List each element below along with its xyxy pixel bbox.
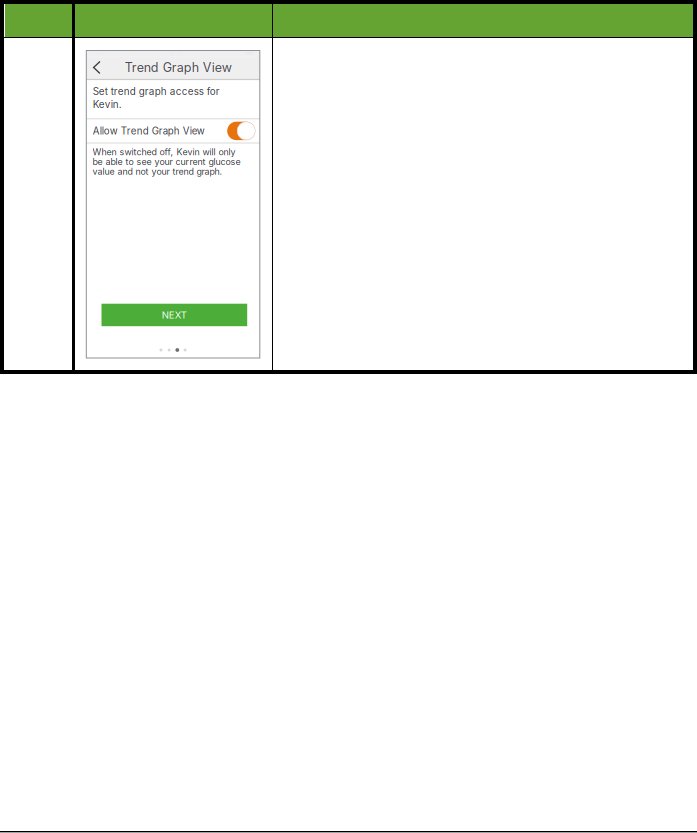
- staticText: When switched off, Kevin will only: [92, 146, 235, 157]
- button[interactable]: NEXT: [101, 304, 247, 326]
- staticText: Allow Trend Graph View: [93, 125, 205, 137]
- staticText: NEXT: [162, 309, 187, 321]
- staticText: •••••: [92, 50, 107, 57]
- button[interactable]: Allow Trend Graph View: [227, 122, 255, 140]
- staticText: Trend Graph View: [125, 60, 232, 75]
- staticText: value and not your trend graph.: [92, 166, 222, 177]
- staticText: be able to see your current glucose: [92, 156, 240, 167]
- staticText: Kevin.: [93, 98, 122, 110]
- button[interactable]: Back: [86, 55, 107, 80]
- staticText: 9:41: [170, 49, 183, 57]
- staticText: Set trend graph access for: [93, 85, 220, 97]
